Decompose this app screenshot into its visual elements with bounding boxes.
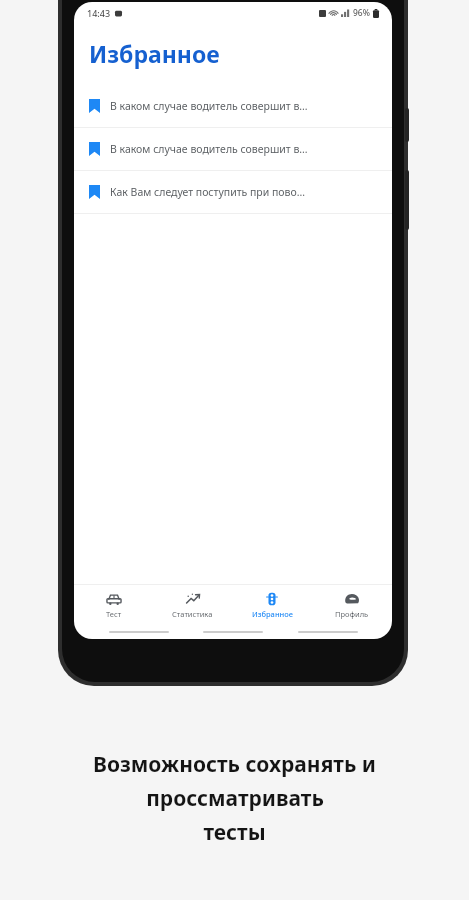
staticText: Как Вам следует поступить при пово… — [110, 185, 306, 199]
staticText: Возможность сохранять и — [93, 750, 376, 779]
other: Тест — [106, 592, 122, 606]
staticText: Тест — [106, 609, 122, 619]
button[interactable]: Как Вам следует поступить при пово… — [74, 171, 392, 213]
staticText: 96% — [353, 7, 370, 19]
button[interactable]: Статистика — [153, 585, 232, 625]
staticText: тесты — [203, 818, 266, 847]
button[interactable]: В каком случае водитель совершит в… — [74, 85, 392, 127]
staticText: Избранное — [252, 609, 293, 619]
button[interactable]: Тест — [74, 585, 153, 625]
staticText: Избранное — [89, 38, 220, 69]
staticText: Статистика — [172, 609, 213, 619]
staticText: В каком случае водитель совершит в… — [110, 142, 308, 156]
staticText: Профиль — [335, 609, 369, 619]
staticText: проссматривать — [146, 784, 324, 813]
staticText: В каком случае водитель совершит в… — [110, 99, 308, 113]
button[interactable]: Профиль — [312, 585, 392, 625]
button[interactable]: Избранное — [232, 585, 312, 625]
button[interactable]: В каком случае водитель совершит в… — [74, 128, 392, 170]
other: Статистика — [185, 592, 201, 606]
other: Избранное — [264, 592, 280, 606]
other: Профиль — [344, 592, 360, 606]
staticText: 14:43 — [87, 7, 111, 19]
